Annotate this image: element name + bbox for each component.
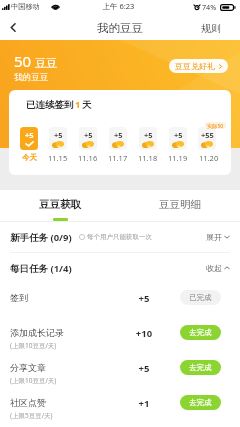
staticText: 展开 xyxy=(206,232,222,242)
staticText: 去完成 xyxy=(189,328,212,337)
staticText: 我的豆豆 xyxy=(14,72,48,83)
button[interactable]: 去完成 xyxy=(180,360,221,375)
staticText: (上限5豆豆/天) xyxy=(10,411,53,420)
button[interactable]: 豆豆明细 xyxy=(120,190,240,222)
button[interactable]: 添加成长记录 xyxy=(0,318,240,353)
staticText: 11.16 xyxy=(78,153,98,163)
button[interactable]: 展开 xyxy=(206,232,230,242)
staticText: 天 xyxy=(82,99,92,111)
staticText: 上午 6:23 xyxy=(101,1,136,11)
staticText: 规则 xyxy=(201,22,221,35)
button[interactable]: 签到 xyxy=(0,283,240,318)
staticText: 中国移动 xyxy=(11,2,40,11)
button[interactable]: 去完成 xyxy=(180,325,221,340)
button[interactable]: Back xyxy=(0,14,26,40)
staticText: 11.18 xyxy=(138,153,158,163)
button[interactable]: 收起 xyxy=(206,263,230,273)
button[interactable]: 已完成 xyxy=(180,290,221,305)
staticText: 豆豆 xyxy=(35,56,57,70)
button[interactable]: 去完成 xyxy=(180,395,221,410)
staticText: +5 xyxy=(114,130,123,140)
staticText: 豆豆获取 xyxy=(39,198,81,211)
staticText: 11.19 xyxy=(168,153,188,163)
staticText: 74% xyxy=(202,2,217,12)
staticText: 豆豆明细 xyxy=(159,198,201,211)
staticText: 今天 xyxy=(22,153,37,162)
staticText: 11.15 xyxy=(48,153,68,163)
button[interactable]: +5 xyxy=(20,127,38,150)
staticText: 分享文章 xyxy=(10,362,46,373)
button[interactable]: 豆豆获取 xyxy=(0,190,120,222)
button[interactable]: +5 xyxy=(169,127,187,150)
button[interactable]: 分享文章 xyxy=(0,353,240,388)
staticText: +5 xyxy=(132,292,156,305)
staticText: 已连续签到 xyxy=(26,99,74,111)
staticText: 去完成 xyxy=(189,363,212,372)
staticText: 签到 xyxy=(10,292,28,303)
staticText: (上限10豆豆/天) xyxy=(10,341,57,350)
button[interactable]: +5 xyxy=(139,127,157,150)
staticText: 添加成长记录 xyxy=(10,327,64,338)
button[interactable]: +5 xyxy=(109,127,127,150)
staticText: 每日任务 (1/4) xyxy=(10,262,72,275)
staticText: +55 xyxy=(201,130,214,140)
staticText: 1 xyxy=(75,98,81,111)
staticText: +1 xyxy=(132,397,156,410)
button[interactable]: 社区点赞 xyxy=(0,388,240,423)
staticText: +5 xyxy=(144,130,153,140)
staticText: 我的豆豆 xyxy=(97,21,143,35)
button[interactable]: 规则 xyxy=(191,18,240,39)
staticText: 新手任务 (0/9) xyxy=(10,231,72,244)
staticText: +5 xyxy=(25,130,34,140)
staticText: 每个用户只能获取一次 xyxy=(87,233,152,241)
staticText: 社区点赞 xyxy=(10,397,46,408)
staticText: 实际50 xyxy=(207,122,224,129)
staticText: +5 xyxy=(84,130,93,140)
button[interactable]: +5 xyxy=(79,127,97,150)
staticText: 11.20 xyxy=(199,153,219,163)
button[interactable]: 豆豆兑好礼 xyxy=(169,59,228,73)
staticText: +10 xyxy=(132,327,156,340)
button[interactable]: +55 xyxy=(198,127,216,150)
staticText: 已完成 xyxy=(189,293,212,302)
staticText: 豆豆兑好礼 xyxy=(175,61,215,71)
button[interactable]: +5 xyxy=(49,127,67,150)
staticText: 11.17 xyxy=(108,153,128,163)
staticText: 去完成 xyxy=(189,398,212,407)
staticText: (上限10豆豆/天) xyxy=(10,376,57,385)
staticText: 50 xyxy=(14,51,32,71)
staticText: +5 xyxy=(132,362,156,375)
staticText: +5 xyxy=(174,130,183,140)
staticText: 收起 xyxy=(206,263,222,273)
staticText: +5 xyxy=(54,130,63,140)
